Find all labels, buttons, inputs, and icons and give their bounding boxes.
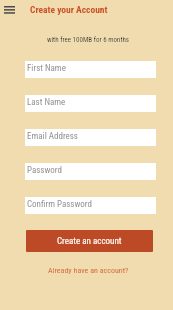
staticText: Confirm Password bbox=[27, 199, 92, 210]
staticText: Last Name bbox=[27, 97, 66, 108]
staticText: with free 100MB for 6 months bbox=[3, 36, 173, 44]
button[interactable]: Last Name bbox=[25, 95, 156, 112]
button[interactable]: Email Address bbox=[25, 129, 156, 146]
staticText: Email Address bbox=[27, 131, 78, 142]
staticText: First Name bbox=[27, 63, 66, 74]
button[interactable]: First Name bbox=[25, 61, 156, 78]
staticText: Password bbox=[27, 165, 62, 176]
staticText: Already have an account? bbox=[48, 266, 129, 275]
staticText: Create an account bbox=[57, 236, 122, 247]
button[interactable]: Confirm Password bbox=[25, 197, 156, 214]
button[interactable]: Password bbox=[25, 163, 156, 180]
button[interactable]: Open navigation menu bbox=[0, 1, 19, 20]
button[interactable]: Create an account bbox=[26, 230, 153, 252]
button[interactable]: Already have an account? bbox=[3, 266, 173, 275]
staticText: Create your Account bbox=[30, 4, 108, 15]
